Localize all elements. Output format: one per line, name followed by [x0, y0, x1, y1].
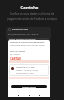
staticText: pagamento antes de finalizar a compra [0, 17, 64, 21]
staticText: Confira os seus dados e a forma de [0, 12, 64, 16]
staticText: Credito - 1x de R$ 159,80 [16, 69, 39, 72]
button[interactable]: Alterar endereco de entrega [8, 38, 49, 40]
staticText: Rua Jose Bonifacio, 450 - apto 32 [8, 33, 39, 36]
staticText: Total do pedido [10, 50, 26, 53]
button[interactable]: Finalizar compra [11, 85, 47, 88]
button[interactable]: Entrega em casa [6, 27, 51, 40]
staticText: Finalizar compra [22, 86, 36, 88]
staticText: Entrega em casa [12, 28, 29, 31]
staticText: Voce pode pagar com cartao ou pix [10, 44, 45, 47]
staticText: Carrinho [0, 5, 59, 11]
staticText: Alterar endereco de entrega [8, 38, 36, 40]
staticText: Mastercard •••• 4021 [16, 66, 36, 69]
staticText: Titular Maria S. Silva [16, 72, 34, 75]
staticText: R$ 159,80 [10, 53, 20, 56]
staticText: Selecione a forma de pagamento [10, 41, 45, 44]
button[interactable]: Cartao de credito [9, 64, 49, 76]
staticText: CARTAO [10, 57, 22, 61]
other: Cartao de credito [11, 67, 14, 70]
